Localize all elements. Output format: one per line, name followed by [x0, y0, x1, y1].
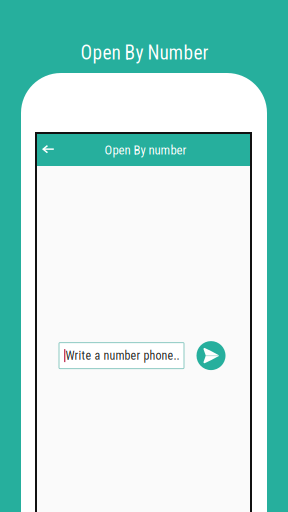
staticText: Write a number phone.. [65, 349, 179, 363]
staticText: Open By number [105, 143, 187, 158]
button[interactable]: Back [36, 137, 60, 161]
button[interactable]: Send [196, 341, 226, 370]
staticText: Open By Number [80, 42, 208, 64]
